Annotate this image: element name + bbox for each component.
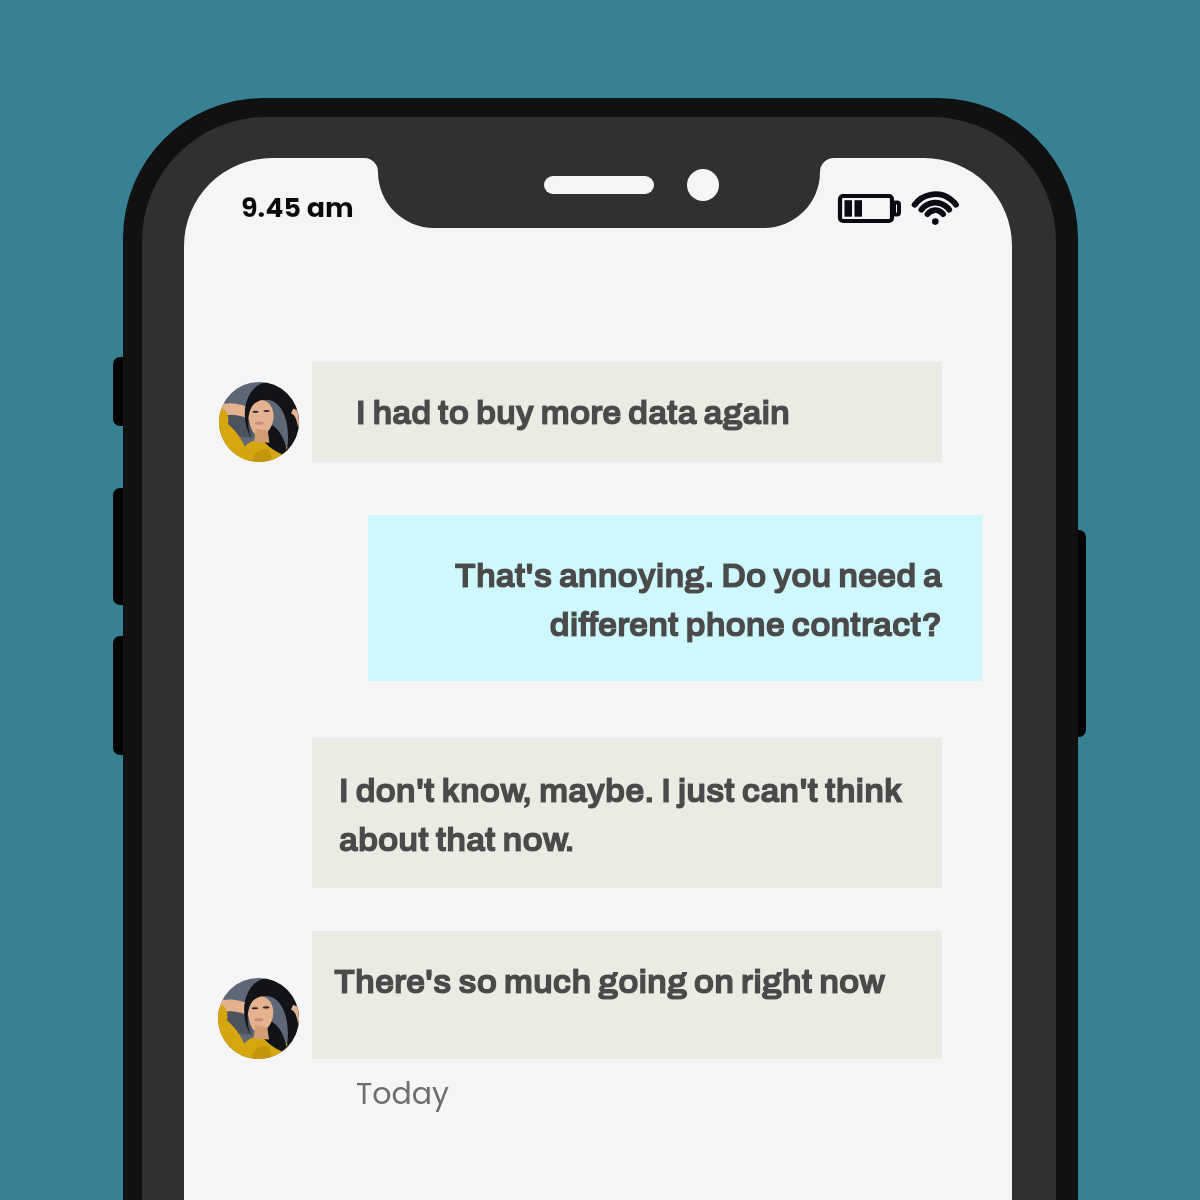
staticText: There's so much going on right now bbox=[334, 963, 886, 1000]
staticText: I had to buy more data again bbox=[356, 394, 790, 431]
button[interactable]: There's so much going on right now bbox=[312, 931, 942, 1059]
button[interactable]: That's annoying. Do you need a different… bbox=[368, 515, 982, 681]
staticText: 9.45 am bbox=[241, 189, 354, 227]
button[interactable]: I had to buy more data again bbox=[312, 362, 942, 462]
button[interactable]: I don't know, maybe. I just can't think … bbox=[312, 738, 942, 888]
staticText: That's annoying. Do you need a different… bbox=[368, 557, 942, 643]
staticText: I don't know, maybe. I just can't think … bbox=[339, 772, 903, 858]
staticText: Today bbox=[356, 1073, 449, 1115]
